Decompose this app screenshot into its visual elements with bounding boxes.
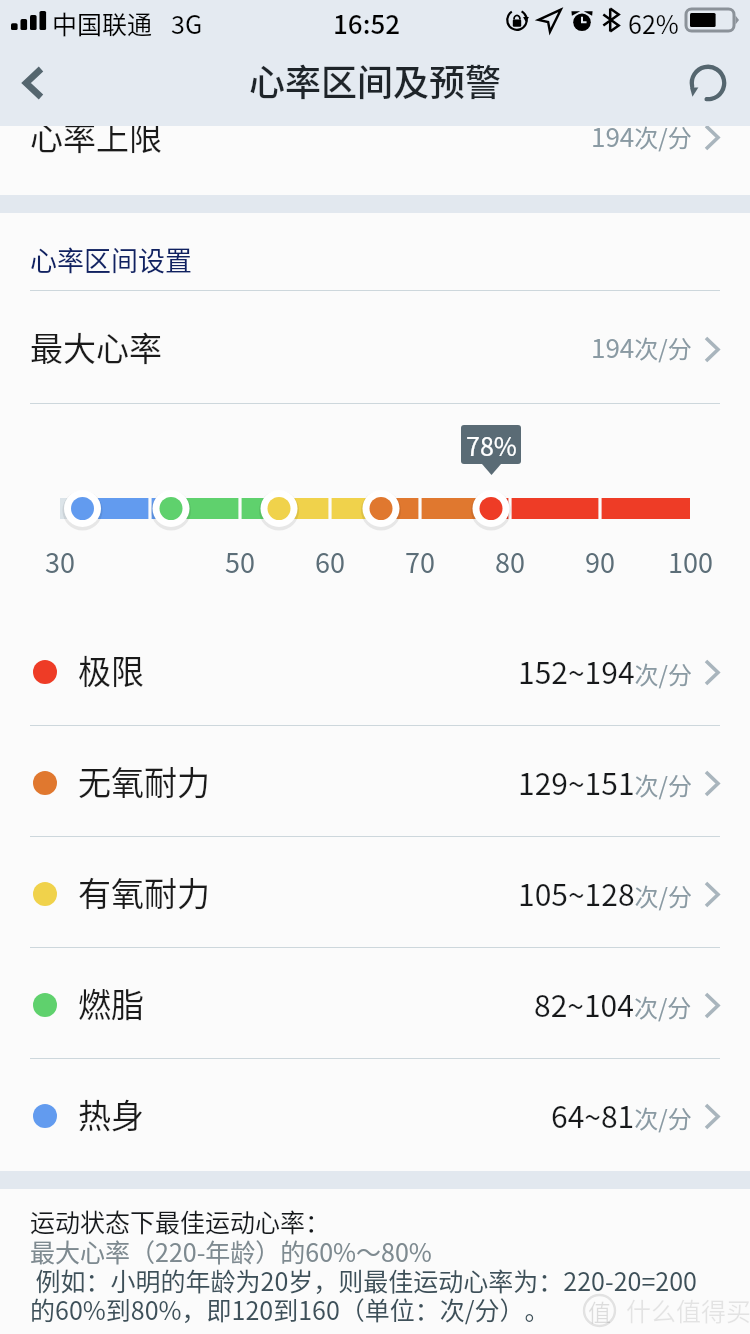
staticText: 最大心率（220-年龄）的60%～80% — [30, 1233, 432, 1269]
staticText: 燃脂 — [78, 979, 144, 1027]
staticText: 194次/分 — [591, 328, 692, 366]
staticText: 例如：小明的年龄为20岁，则最佳运动心率为：220-20=200 — [30, 1262, 697, 1298]
staticText: 运动状态下最佳运动心率： — [30, 1203, 331, 1239]
staticText: 78% — [466, 427, 517, 463]
button[interactable]: 心率上限 — [0, 126, 750, 170]
staticText: 16:52 — [333, 4, 401, 42]
staticText: 50 — [225, 542, 255, 581]
staticText: 70 — [405, 542, 435, 581]
staticText: 有氧耐力 — [78, 868, 210, 916]
staticText: 的60%到80%，即120到160（单位：次/分）。 — [30, 1291, 550, 1327]
staticText: 64~81次/分 — [551, 1093, 692, 1136]
button[interactable]: 无氧耐力 — [0, 726, 750, 836]
staticText: 90 — [585, 542, 615, 581]
staticText: 心率区间设置 — [30, 240, 192, 279]
staticText: 心率区间及预警 — [249, 54, 502, 106]
staticText: 80 — [495, 542, 525, 581]
staticText: 152~194次/分 — [518, 649, 692, 692]
staticText: 105~128次/分 — [518, 871, 692, 914]
staticText: 3G — [171, 5, 203, 41]
button[interactable]: 有氧耐力 — [0, 837, 750, 947]
button[interactable]: 最大心率 — [0, 291, 750, 403]
staticText: 心率上限 — [30, 126, 162, 160]
staticText: 值 — [588, 1294, 611, 1327]
staticText: 最大心率 — [30, 323, 162, 371]
staticText: 什么值得买 — [626, 1292, 750, 1328]
staticText: 82~104次/分 — [534, 982, 692, 1025]
button[interactable]: 热身 — [0, 1059, 750, 1169]
staticText: 极限 — [78, 646, 144, 694]
button[interactable]: Refresh — [666, 40, 750, 126]
staticText: 60 — [315, 542, 345, 581]
button[interactable]: 燃脂 — [0, 948, 750, 1058]
staticText: 194次/分 — [591, 126, 692, 155]
staticText: 129~151次/分 — [518, 760, 692, 803]
staticText: 中国联通 — [52, 5, 153, 41]
button[interactable]: Back — [0, 40, 68, 126]
staticText: 62% — [628, 5, 679, 41]
staticText: 无氧耐力 — [78, 757, 210, 805]
staticText: 30 — [45, 542, 75, 581]
staticText: 热身 — [78, 1090, 144, 1138]
button[interactable]: 极限 — [0, 615, 750, 725]
staticText: 100 — [668, 542, 713, 581]
